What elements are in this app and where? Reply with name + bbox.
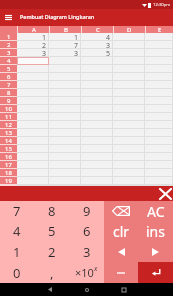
button[interactable] <box>81 153 113 161</box>
button[interactable]: Menu <box>0 9 17 26</box>
button[interactable] <box>17 177 49 185</box>
button[interactable] <box>113 145 145 153</box>
button[interactable] <box>113 57 145 65</box>
button[interactable] <box>145 41 173 49</box>
button[interactable]: clr <box>104 221 138 241</box>
button[interactable] <box>113 33 145 41</box>
button[interactable] <box>113 161 145 169</box>
button[interactable] <box>81 145 113 153</box>
button[interactable] <box>17 105 49 113</box>
button[interactable]: 8 <box>34 201 69 221</box>
button[interactable] <box>81 65 113 73</box>
button[interactable]: Enter <box>138 262 173 283</box>
button[interactable]: 5 <box>34 221 69 241</box>
button[interactable]: 19 <box>0 177 17 185</box>
button[interactable] <box>49 97 81 105</box>
button[interactable]: D <box>114 26 145 33</box>
button[interactable] <box>17 57 49 65</box>
button[interactable]: 17 <box>0 161 17 169</box>
button[interactable]: 2 <box>0 41 17 49</box>
button[interactable] <box>145 81 173 89</box>
button[interactable] <box>81 121 113 129</box>
button[interactable]: ×10 <box>69 262 104 283</box>
button[interactable]: 4 <box>0 57 17 65</box>
button[interactable]: , <box>34 262 69 283</box>
button[interactable]: 3 <box>49 49 81 57</box>
button[interactable]: Minus <box>104 262 138 283</box>
button[interactable] <box>145 137 173 145</box>
button[interactable]: 7 <box>49 41 81 49</box>
button[interactable] <box>113 105 145 113</box>
button[interactable]: Backspace <box>104 201 138 221</box>
button[interactable] <box>145 33 173 41</box>
button[interactable] <box>113 177 145 185</box>
button[interactable] <box>81 169 113 177</box>
button[interactable]: 3 <box>0 49 17 57</box>
button[interactable] <box>81 161 113 169</box>
button[interactable] <box>113 49 145 57</box>
button[interactable]: 2 <box>34 241 69 262</box>
button[interactable] <box>113 129 145 137</box>
button[interactable]: 7 <box>0 201 34 221</box>
button[interactable] <box>81 137 113 145</box>
button[interactable]: E <box>146 26 173 33</box>
button[interactable]: 1 <box>0 241 34 262</box>
button[interactable]: 0 <box>0 262 34 283</box>
button[interactable] <box>145 129 173 137</box>
button[interactable] <box>17 121 49 129</box>
button[interactable] <box>145 113 173 121</box>
button[interactable]: 8 <box>0 89 17 97</box>
button[interactable]: Back <box>38 283 61 296</box>
button[interactable]: 12 <box>0 121 17 129</box>
button[interactable] <box>17 169 49 177</box>
button[interactable]: 3 <box>81 41 113 49</box>
button[interactable] <box>49 129 81 137</box>
button[interactable]: 14 <box>0 137 17 145</box>
button[interactable] <box>49 57 81 65</box>
button[interactable] <box>113 41 145 49</box>
button[interactable] <box>81 177 113 185</box>
button[interactable]: 5 <box>81 49 113 57</box>
button[interactable]: 3 <box>69 241 104 262</box>
button[interactable] <box>49 89 81 97</box>
button[interactable] <box>145 177 173 185</box>
button[interactable] <box>81 57 113 65</box>
button[interactable]: Move right <box>138 241 173 262</box>
button[interactable] <box>81 129 113 137</box>
button[interactable] <box>145 49 173 57</box>
button[interactable]: Home <box>75 283 98 296</box>
button[interactable]: Close <box>157 186 173 201</box>
button[interactable] <box>49 137 81 145</box>
button[interactable] <box>17 153 49 161</box>
button[interactable] <box>17 129 49 137</box>
button[interactable] <box>81 97 113 105</box>
button[interactable]: 1 <box>0 33 17 41</box>
button[interactable] <box>145 57 173 65</box>
button[interactable] <box>113 137 145 145</box>
button[interactable]: Recents <box>112 283 135 296</box>
button[interactable] <box>81 113 113 121</box>
button[interactable]: 15 <box>0 145 17 153</box>
button[interactable] <box>113 97 145 105</box>
button[interactable] <box>49 113 81 121</box>
button[interactable] <box>113 89 145 97</box>
button[interactable] <box>145 105 173 113</box>
button[interactable] <box>81 105 113 113</box>
button[interactable] <box>81 81 113 89</box>
button[interactable]: 3 <box>17 49 49 57</box>
button[interactable] <box>113 73 145 81</box>
button[interactable] <box>49 153 81 161</box>
button[interactable]: 2 <box>17 41 49 49</box>
button[interactable] <box>81 73 113 81</box>
button[interactable] <box>113 113 145 121</box>
button[interactable] <box>113 169 145 177</box>
button[interactable] <box>113 153 145 161</box>
button[interactable]: C <box>82 26 113 33</box>
button[interactable] <box>17 81 49 89</box>
button[interactable] <box>17 145 49 153</box>
button[interactable] <box>145 153 173 161</box>
button[interactable] <box>17 161 49 169</box>
